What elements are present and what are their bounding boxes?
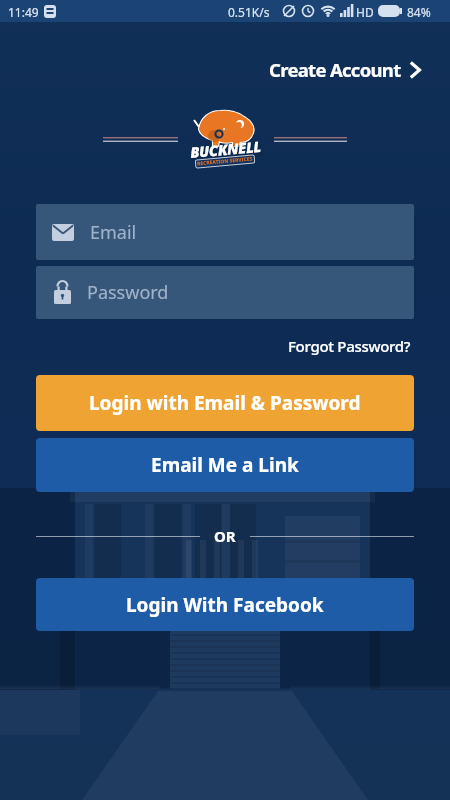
staticText: Forgot Password?	[288, 336, 411, 356]
staticText: Create Account	[269, 57, 401, 82]
staticText: 84%	[407, 4, 431, 20]
staticText: OR	[214, 526, 236, 546]
staticText: Login with Email & Password	[89, 390, 361, 416]
staticText: 11:49	[8, 4, 39, 20]
staticText: Password	[87, 280, 169, 305]
staticText: HD	[356, 4, 374, 20]
staticText: BUCKNELL	[189, 136, 262, 162]
staticText: Email	[90, 220, 137, 245]
staticText: 0.51K/s	[228, 4, 270, 20]
staticText: Email Me a Link	[151, 452, 299, 478]
staticText: RECREATION SERVICES	[197, 156, 253, 167]
staticText: Login With Facebook	[126, 592, 324, 618]
